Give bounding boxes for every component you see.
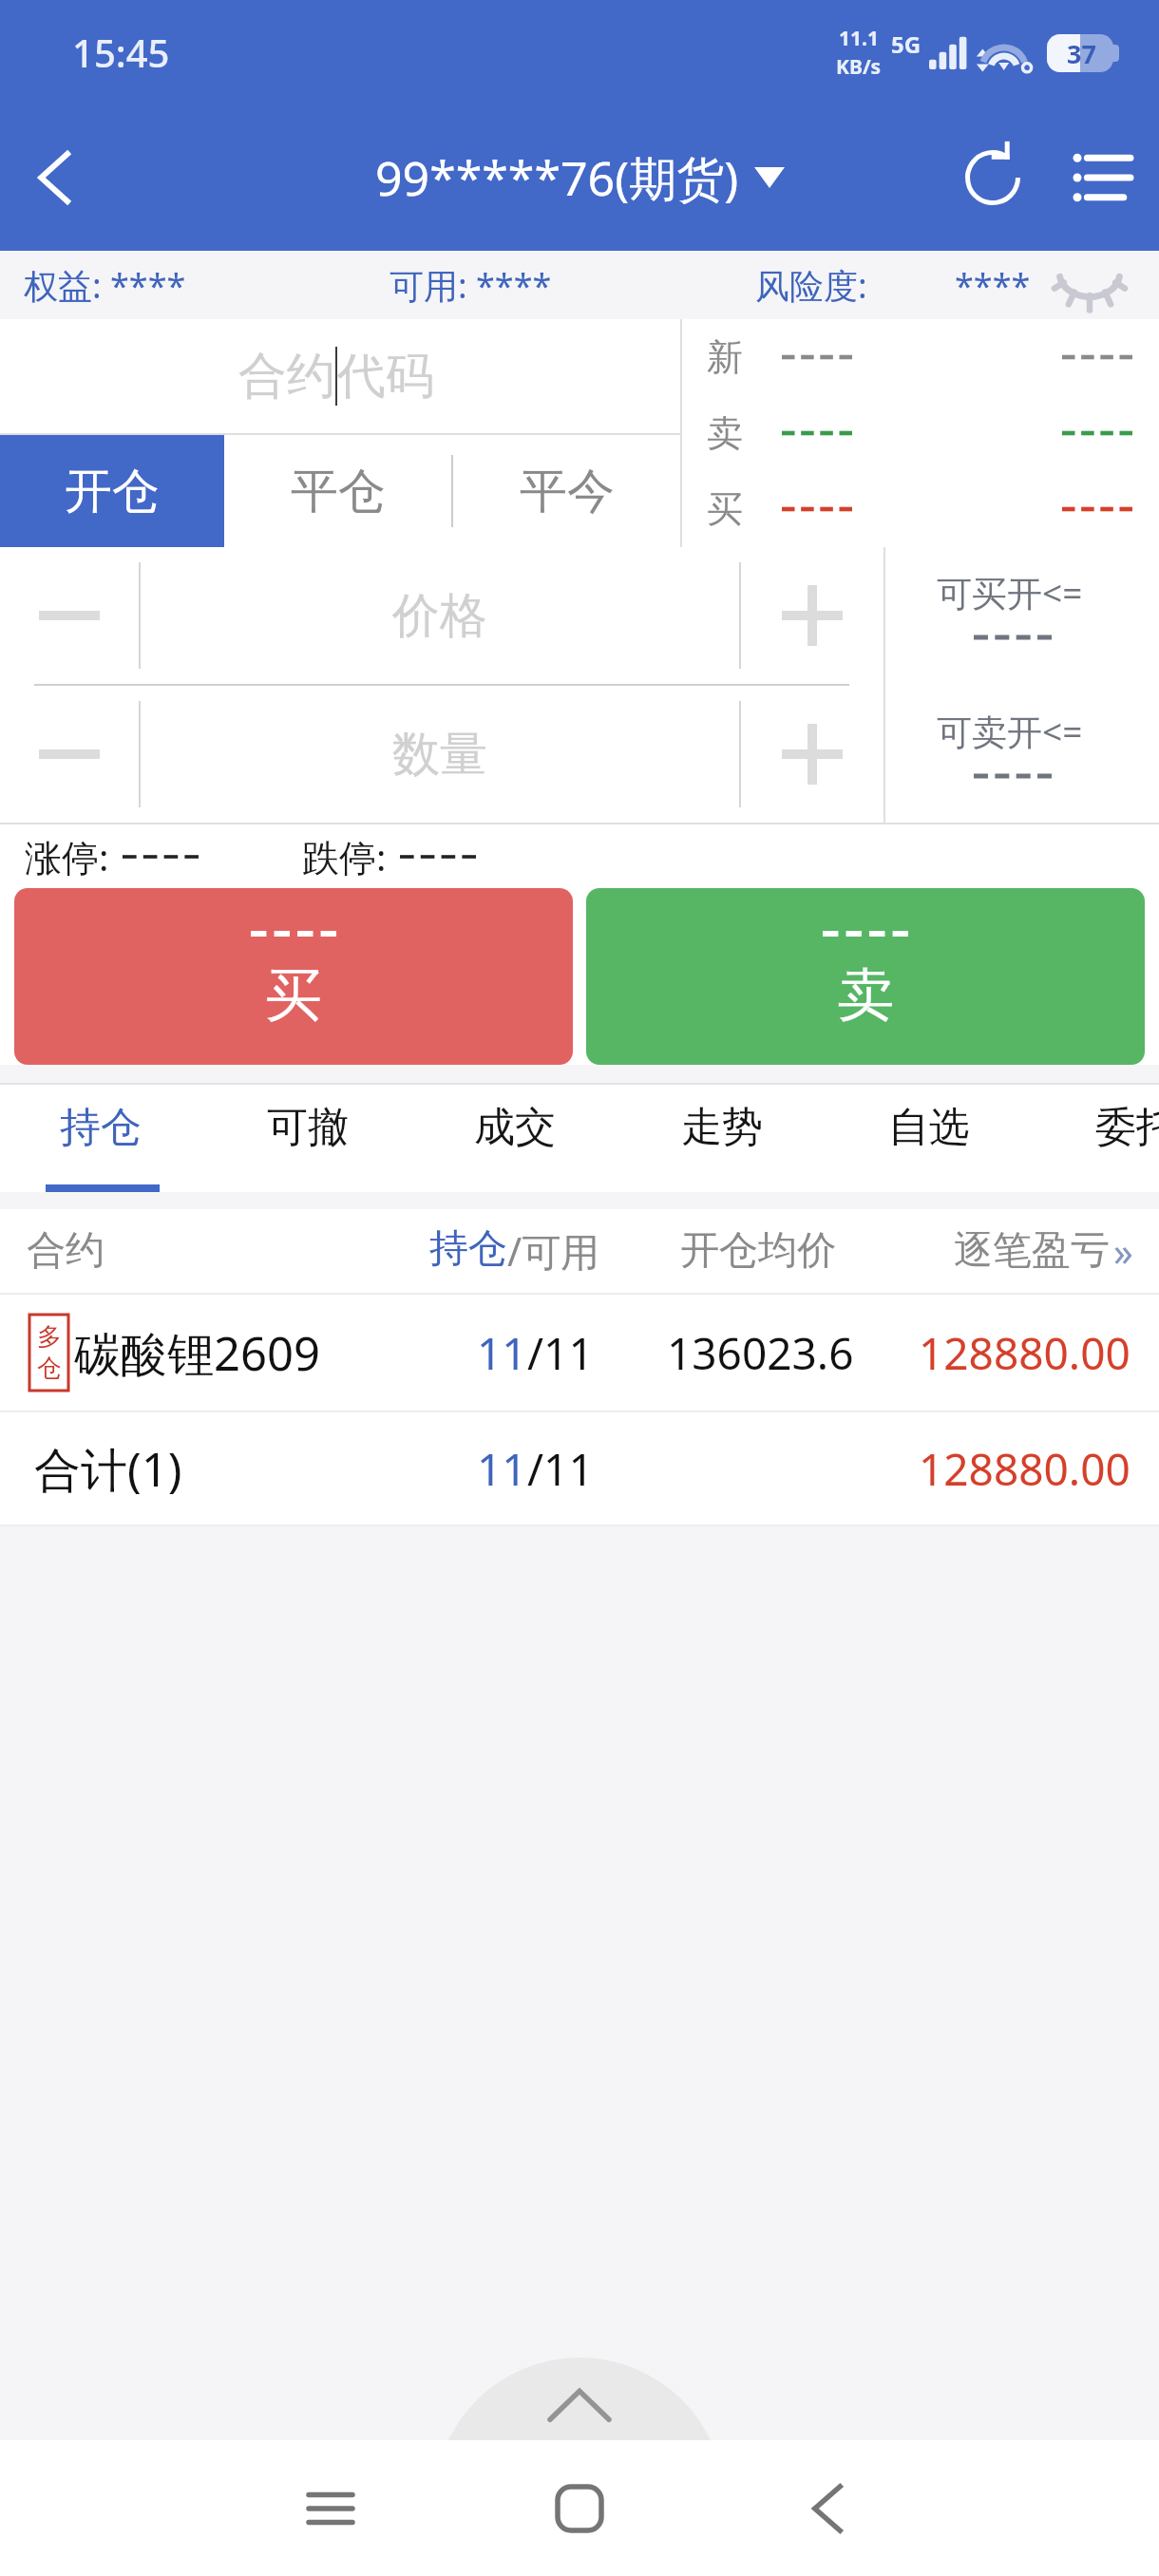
staticText: 委托	[1095, 1102, 1159, 1153]
button[interactable]: Increase 数量	[741, 686, 883, 823]
staticText: 持仓	[429, 1224, 507, 1274]
staticText: 走势	[681, 1102, 763, 1153]
staticText: 买	[265, 959, 322, 1032]
staticText: 价格	[392, 586, 487, 646]
button[interactable]: 合约	[0, 319, 680, 433]
button[interactable]: 价格	[141, 547, 739, 684]
button[interactable]: Back	[0, 104, 114, 251]
staticText: 11	[477, 1439, 527, 1499]
staticText: 逐笔盈亏	[954, 1226, 1110, 1276]
staticText: 仓	[37, 1353, 62, 1384]
staticText: 数量	[392, 725, 487, 785]
button[interactable]: Home	[513, 2440, 646, 2576]
button[interactable]: Menu	[1045, 104, 1159, 251]
staticText: 99*****76(期货)	[375, 145, 739, 210]
button[interactable]: 走势	[618, 1085, 826, 1192]
staticText: 代码	[337, 346, 434, 407]
button[interactable]: 平仓	[224, 435, 451, 547]
button[interactable]: Refresh	[940, 104, 1045, 251]
staticText: 权益: ****	[24, 262, 186, 309]
staticText: 卖	[707, 410, 743, 456]
staticText: 15:45	[72, 27, 170, 78]
staticText: 可买开<=	[937, 568, 1083, 616]
button[interactable]: Recents	[264, 2440, 397, 2576]
staticText: 11.1	[839, 25, 879, 52]
staticText: 合计(1)	[34, 1437, 182, 1501]
staticText: 持仓	[60, 1102, 142, 1153]
staticText: 卖	[837, 959, 894, 1032]
staticText: 成交	[474, 1102, 556, 1153]
staticText: 合约	[238, 346, 335, 407]
staticText: 开仓	[65, 462, 160, 521]
staticText: /11	[527, 1323, 594, 1383]
staticText: 涨停:	[25, 831, 109, 881]
staticText: 128880.00	[919, 1439, 1130, 1499]
staticText: 多	[37, 1321, 62, 1353]
button[interactable]: Hide balance	[1053, 251, 1127, 319]
staticText: ****	[955, 262, 1031, 309]
staticText: 开仓均价	[680, 1226, 836, 1276]
staticText: 风险度:	[755, 262, 867, 309]
button[interactable]: 持仓	[0, 1085, 204, 1192]
staticText: 跌停:	[302, 831, 387, 881]
button[interactable]: 开仓	[0, 435, 224, 547]
staticText: 11	[477, 1323, 527, 1383]
staticText: 平仓	[291, 462, 386, 521]
button[interactable]: 自选	[826, 1085, 1033, 1192]
button[interactable]: 可撤	[204, 1085, 411, 1192]
button[interactable]: 平今	[453, 435, 680, 547]
button[interactable]: 成交	[411, 1085, 618, 1192]
staticText: 37	[1067, 36, 1096, 71]
button[interactable]: 卖	[586, 888, 1145, 1065]
button[interactable]: 数量	[141, 686, 739, 823]
button[interactable]: Decrease 价格	[0, 547, 139, 684]
button[interactable]: 委托	[1033, 1085, 1159, 1192]
button[interactable]: Expand	[434, 2358, 725, 2440]
staticText: KB/s	[836, 53, 882, 81]
staticText: 136023.6	[667, 1323, 854, 1383]
button[interactable]: Decrease 数量	[0, 686, 139, 823]
button[interactable]: Back	[762, 2440, 895, 2576]
staticText: /11	[527, 1439, 594, 1499]
staticText: 自选	[888, 1102, 970, 1153]
staticText: 新	[707, 334, 743, 380]
button[interactable]: 可用: ****	[389, 262, 552, 309]
staticText: 买	[707, 486, 743, 532]
staticText: 5G	[891, 28, 921, 60]
button[interactable]: 权益: ****	[24, 262, 186, 309]
staticText: 碳酸锂2609	[74, 1321, 321, 1385]
staticText: 128880.00	[919, 1323, 1130, 1383]
staticText: »	[1113, 1224, 1133, 1278]
staticText: 平今	[520, 462, 615, 521]
staticText: /可用	[507, 1224, 600, 1278]
staticText: 可撤	[267, 1102, 349, 1153]
button[interactable]: Increase 价格	[741, 547, 883, 684]
button[interactable]: 买	[14, 888, 573, 1065]
staticText: 可用: ****	[389, 262, 552, 309]
staticText: 可卖开<=	[937, 707, 1083, 755]
staticText: 合约	[27, 1226, 104, 1276]
